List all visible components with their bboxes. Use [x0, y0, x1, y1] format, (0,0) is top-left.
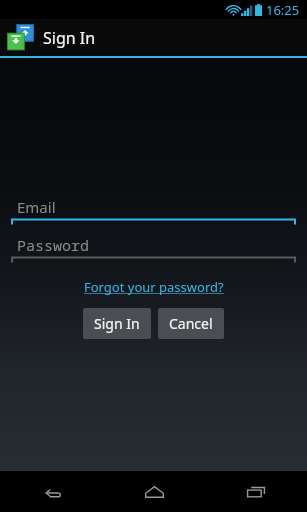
button[interactable]: Back	[0, 471, 103, 512]
button[interactable]: Password	[11, 234, 296, 262]
button[interactable]: Cancel	[158, 308, 224, 339]
button[interactable]: Email	[11, 196, 296, 224]
staticText: Email	[17, 197, 56, 217]
button[interactable]: Recent apps	[205, 471, 307, 512]
staticText: 16:25	[266, 1, 300, 19]
staticText: Sign In	[94, 314, 140, 333]
button[interactable]: Sign In	[83, 308, 151, 339]
staticText: Forgot your password?	[84, 278, 224, 296]
button[interactable]: Home	[103, 471, 205, 512]
staticText: Cancel	[169, 314, 213, 333]
staticText: Sign In	[43, 27, 96, 49]
staticText: Password	[17, 235, 90, 255]
button[interactable]: Forgot your password?	[80, 276, 228, 298]
